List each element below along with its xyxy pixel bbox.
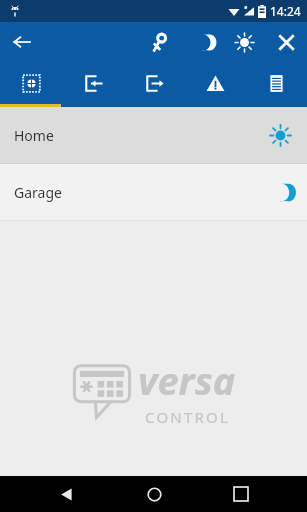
button[interactable]: Recents	[219, 476, 263, 512]
staticText: CONTROL	[145, 407, 230, 427]
button[interactable]: Night mode	[181, 22, 223, 62]
button[interactable]: Back	[44, 476, 88, 512]
staticText: 14:24	[270, 3, 301, 19]
button[interactable]: Key	[139, 22, 181, 62]
button[interactable]: Garage	[0, 164, 307, 220]
button[interactable]: Alarms	[185, 62, 246, 104]
button[interactable]: Day mode	[223, 22, 265, 62]
staticText: Home	[14, 126, 54, 145]
button[interactable]: Close	[265, 22, 307, 62]
button[interactable]: Log	[246, 62, 307, 104]
button[interactable]: Back	[0, 22, 44, 62]
button[interactable]: Arm	[62, 62, 124, 104]
button[interactable]: Home	[132, 476, 176, 512]
button[interactable]: Disarm	[124, 62, 185, 104]
button[interactable]: Zones	[0, 62, 62, 104]
staticText: Garage	[14, 183, 62, 202]
button[interactable]: Home	[0, 107, 307, 163]
staticText: versa	[138, 354, 236, 406]
